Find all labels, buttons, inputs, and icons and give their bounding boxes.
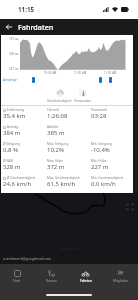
button[interactable]: Back (0, 19, 18, 35)
staticText: Anstieg (7, 125, 19, 129)
staticText: 300 m (9, 52, 18, 56)
button[interactable]: Routen (34, 264, 68, 289)
staticText: 528 m (3, 163, 21, 171)
staticText: Pausenzeit (91, 108, 108, 112)
staticText: 10:30 AM (44, 71, 57, 75)
staticText: Max. Geschwindigkeit (47, 176, 80, 180)
staticText: 0,8 % (3, 146, 19, 154)
staticText: 35,4 km (3, 112, 26, 120)
button[interactable]: Expand map (125, 202, 134, 211)
staticText: Min. Steigung (91, 142, 112, 146)
staticText: Start (13, 279, 21, 283)
staticText: Min. Höhe (91, 159, 107, 163)
staticText: Geschwindigkeit (47, 99, 72, 103)
staticText: zuerrlamerk@googlemail.com (3, 256, 52, 261)
staticText: Routen (46, 279, 57, 283)
button[interactable]: Mitglieder (103, 264, 138, 289)
staticText: 11:00 AM (74, 71, 87, 75)
staticText: 227 m (91, 163, 109, 171)
staticText: Fahrzeit (47, 108, 59, 112)
button[interactable]: Fahrten (68, 264, 103, 289)
staticText: 0,0 km/h (91, 180, 116, 188)
staticText: 03:28 (91, 112, 107, 120)
staticText: 227 m (9, 67, 18, 71)
staticText: 11:30 AM (104, 71, 117, 75)
staticText: Max. Höhe (47, 159, 64, 163)
button[interactable]: Geschwindigkeit (47, 83, 72, 103)
staticText: Mitglieder (113, 279, 129, 283)
staticText: Min. Geschwindigkeit (91, 176, 124, 180)
staticText: 24,6 km/h (3, 180, 32, 188)
staticText: Anstiege (3, 77, 17, 82)
button[interactable]: Start (0, 264, 34, 289)
staticText: 11:15 (18, 5, 35, 14)
staticText: Ø VAM (3, 159, 14, 163)
staticText: Ø Geschwindigkeit (7, 176, 35, 180)
staticText: Temperatur (74, 99, 92, 103)
staticText: 1:26:08 (47, 112, 68, 120)
staticText: Kartendaten (60, 247, 78, 251)
staticText: Ø Steigung (3, 142, 20, 146)
staticText: Max. Steigung (47, 142, 69, 146)
staticText: 385 m (47, 129, 65, 137)
staticText: 384 m (3, 129, 21, 137)
staticText: Abfahrt (47, 125, 59, 129)
staticText: 372 m (47, 163, 65, 171)
staticText: Entfernung (7, 108, 24, 112)
staticText: 10,2% (47, 146, 64, 154)
button[interactable]: Temperatur (74, 83, 92, 103)
staticText: -10,4% (91, 146, 110, 154)
staticText: Fahrten (80, 279, 92, 283)
staticText: 372 m (9, 37, 18, 41)
staticText: 61,5 km/h (47, 180, 76, 188)
staticText: Fahrdaten (18, 22, 54, 32)
